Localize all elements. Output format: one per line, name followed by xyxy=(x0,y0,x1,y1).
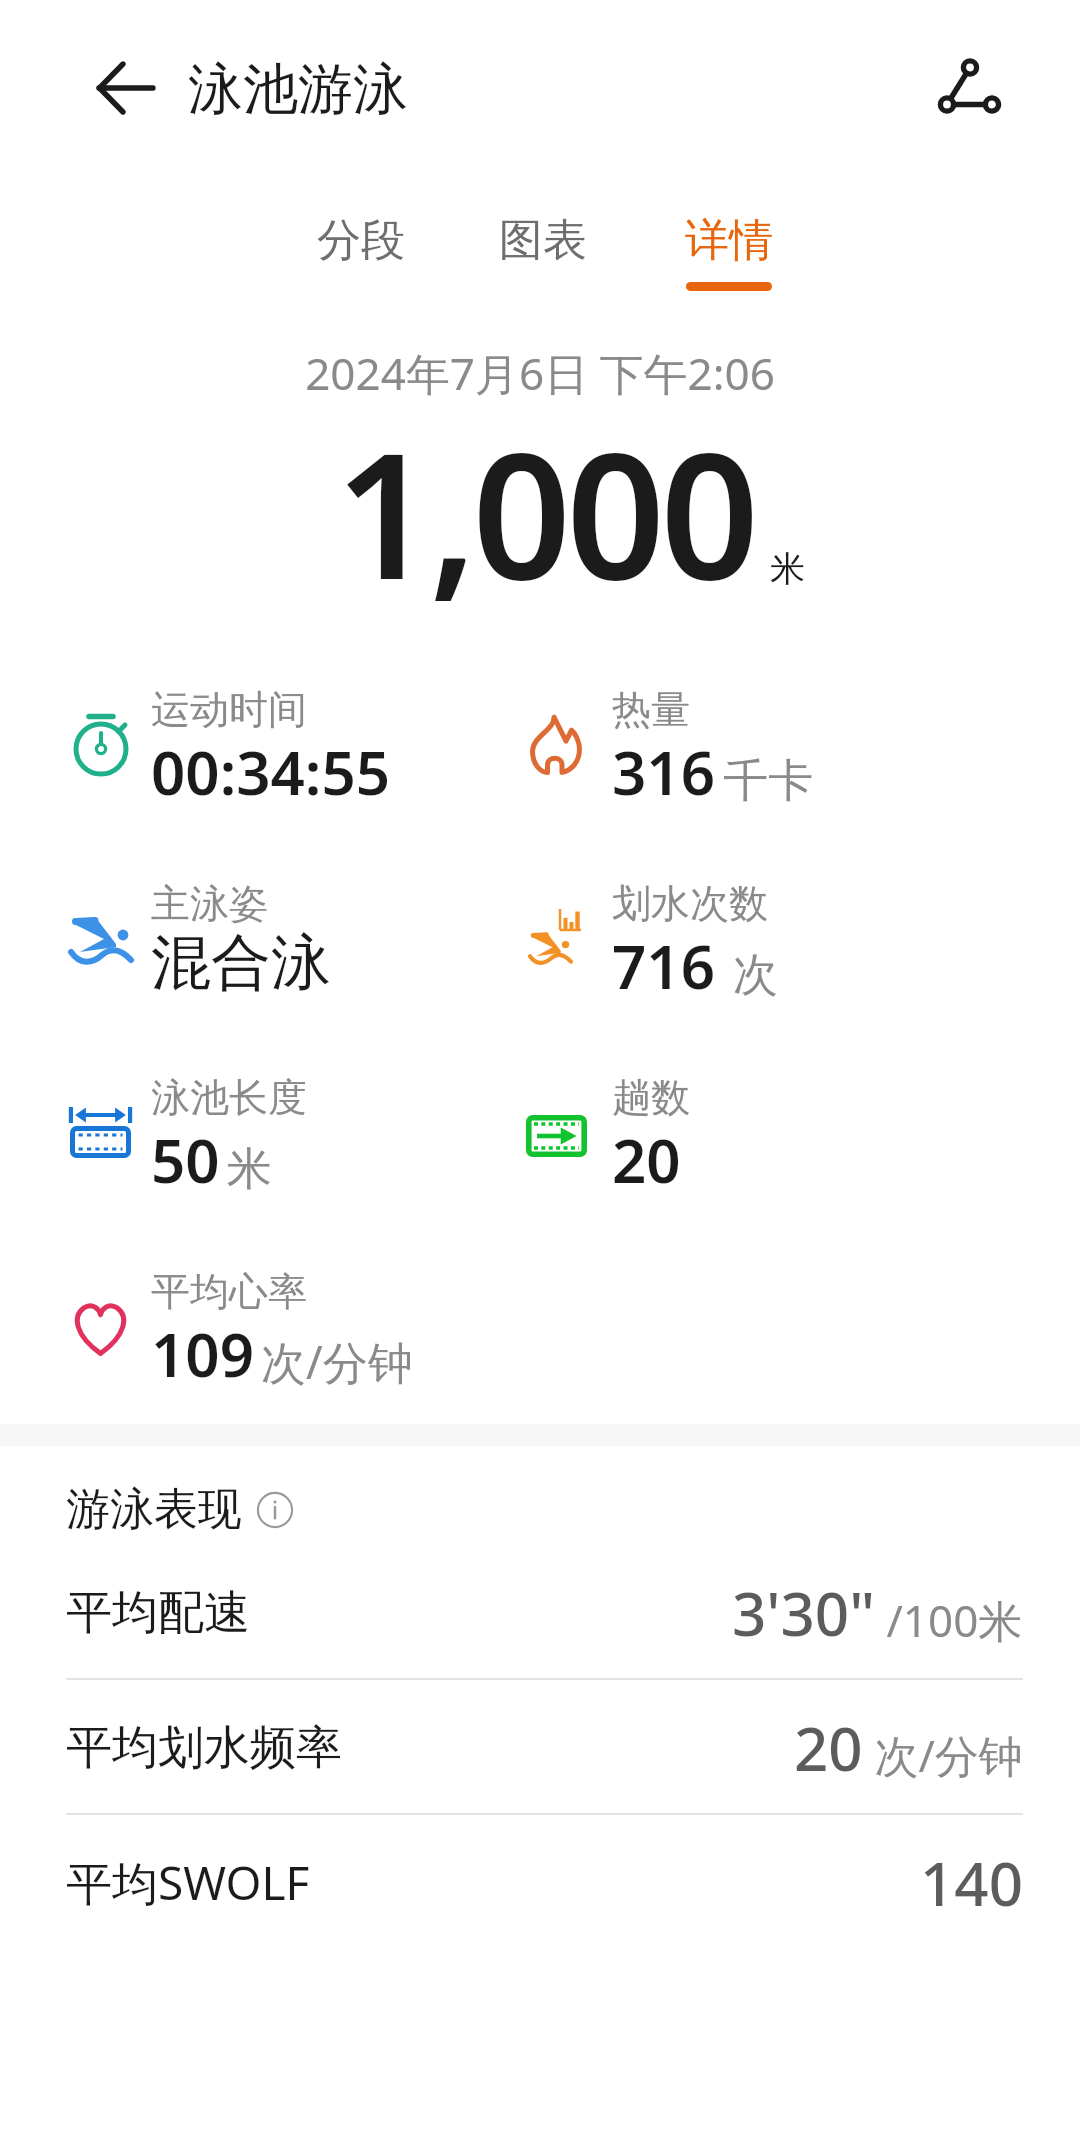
staticText: 平均SWOLF xyxy=(66,1851,310,1914)
button[interactable]: Back xyxy=(84,51,168,135)
staticText: 140 xyxy=(920,1842,1023,1924)
button[interactable]: 平均配速 xyxy=(0,1545,1080,1680)
button[interactable]: 主泳姿 xyxy=(66,870,516,998)
staticText: 泳池游泳 xyxy=(188,55,408,124)
staticText: 2024年7月6日 下午2:06 xyxy=(0,343,1080,403)
staticText: 平均划水频率 xyxy=(66,1719,342,1777)
staticText: 米 xyxy=(227,1141,272,1198)
staticText: 次/分钟 xyxy=(261,1331,413,1392)
staticText: 平均配速 xyxy=(66,1584,250,1642)
button[interactable]: 分段 xyxy=(309,213,413,291)
staticText: 1,000 xyxy=(335,394,755,630)
staticText: 50 xyxy=(151,1119,220,1201)
staticText: 20 xyxy=(612,1119,681,1201)
staticText: 图表 xyxy=(499,213,587,268)
staticText: 划水次数 xyxy=(612,879,768,928)
staticText: 泳池长度 xyxy=(151,1073,307,1122)
staticText: 游泳表现 xyxy=(66,1482,242,1537)
staticText: 混合泳 xyxy=(151,925,331,1001)
staticText: 次/分钟 xyxy=(863,1725,1023,1785)
staticText: 00:34:55 xyxy=(151,731,391,813)
staticText: 716 xyxy=(612,925,715,1007)
staticText: 316 xyxy=(612,731,715,813)
staticText: 运动时间 xyxy=(151,685,307,734)
staticText: 分段 xyxy=(317,213,405,268)
staticText: 千卡 xyxy=(723,753,813,810)
button[interactable]: 图表 xyxy=(491,213,595,291)
staticText: 109 xyxy=(151,1313,254,1395)
button[interactable]: 平均SWOLF xyxy=(0,1815,1080,1950)
staticText: 平均心率 xyxy=(151,1267,307,1316)
button[interactable]: 划水次数 xyxy=(527,870,977,998)
button[interactable]: 运动时间 xyxy=(66,676,516,804)
staticText: 主泳姿 xyxy=(151,879,268,928)
staticText: 详情 xyxy=(685,213,773,268)
button[interactable]: 热量 xyxy=(527,676,977,804)
staticText: 热量 xyxy=(612,685,690,734)
staticText: /100米 xyxy=(875,1590,1023,1650)
button[interactable]: 详情 xyxy=(677,213,781,291)
button[interactable]: 平均划水频率 xyxy=(0,1680,1080,1815)
button[interactable]: 趟数 xyxy=(527,1064,977,1192)
button[interactable]: 泳池长度 xyxy=(66,1064,516,1192)
staticText: 次 xyxy=(733,947,778,1004)
button[interactable]: Share xyxy=(930,49,1014,133)
staticText: 3'30" xyxy=(732,1572,875,1654)
staticText: 趟数 xyxy=(612,1073,690,1122)
staticText: 20 xyxy=(794,1707,863,1789)
button[interactable]: 平均心率 xyxy=(66,1258,516,1386)
staticText: 米 xyxy=(770,547,805,591)
